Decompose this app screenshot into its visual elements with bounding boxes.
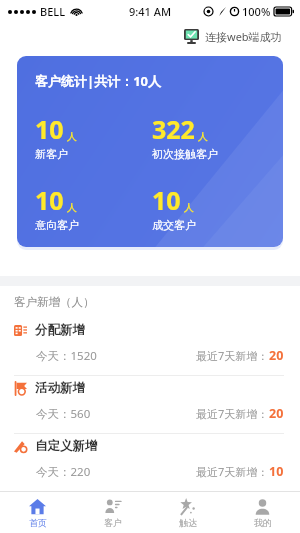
- staticText: 初次接触客户: [152, 147, 218, 161]
- staticText: 客户新增（人）: [14, 295, 95, 309]
- staticText: BELL: [40, 4, 66, 19]
- staticText: 10: [35, 183, 64, 217]
- button[interactable]: 触达: [150, 492, 225, 533]
- button[interactable]: 分配新增: [0, 318, 300, 376]
- staticText: 100%: [242, 4, 271, 19]
- button[interactable]: 活动新增: [0, 376, 300, 434]
- staticText: 成交客户: [152, 218, 196, 232]
- staticText: 10: [152, 183, 181, 217]
- staticText: 今天：220: [36, 464, 91, 480]
- staticText: 新客户: [35, 147, 68, 161]
- staticText: 322: [152, 112, 195, 146]
- staticText: 20: [269, 347, 284, 364]
- button[interactable]: 首页: [0, 492, 75, 533]
- staticText: 触达: [179, 517, 197, 528]
- staticText: 人: [67, 130, 77, 143]
- staticText: 客户: [104, 517, 122, 528]
- staticText: 人: [184, 201, 194, 214]
- staticText: 分配新增: [35, 322, 85, 338]
- staticText: 我的: [254, 517, 272, 528]
- staticText: 活动新增: [35, 380, 85, 396]
- staticText: 人: [67, 201, 77, 214]
- staticText: 最近7天新增：: [196, 348, 269, 363]
- staticText: 首页: [29, 517, 47, 528]
- button[interactable]: 连接web端成功: [182, 27, 284, 46]
- staticText: 人: [198, 130, 208, 143]
- staticText: 20: [269, 405, 284, 422]
- staticText: 9:41 AM: [129, 4, 172, 19]
- staticText: 10: [35, 112, 64, 146]
- staticText: 连接web端成功: [205, 29, 282, 44]
- staticText: 今天：1520: [36, 348, 97, 364]
- staticText: 10: [269, 463, 284, 480]
- staticText: 自定义新增: [35, 438, 98, 454]
- button[interactable]: 自定义新增: [0, 434, 300, 492]
- staticText: 最近7天新增：: [196, 464, 269, 479]
- staticText: 意向客户: [35, 218, 79, 232]
- staticText: 最近7天新增：: [196, 406, 269, 421]
- button[interactable]: 客户: [75, 492, 150, 533]
- button[interactable]: 我的: [225, 492, 300, 533]
- button[interactable]: 客户统计|共计：10人: [17, 56, 283, 247]
- staticText: 客户统计|共计：10人: [35, 72, 162, 90]
- staticText: 今天：560: [36, 406, 91, 422]
